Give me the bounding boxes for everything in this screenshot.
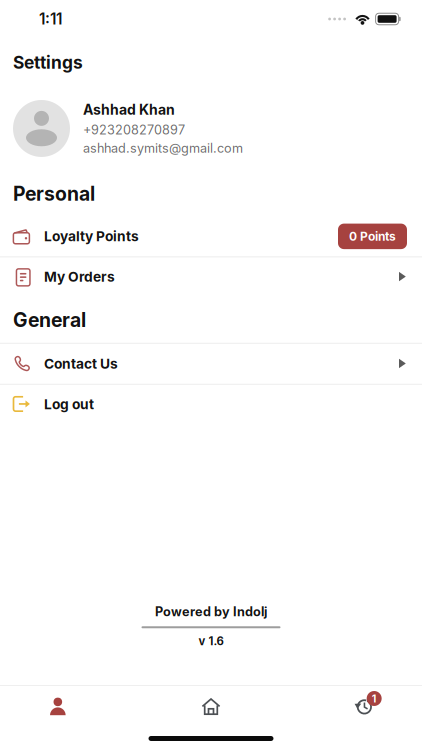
button[interactable]: Contact Us xyxy=(0,344,422,384)
button[interactable]: Loyalty Points xyxy=(0,216,422,256)
staticText: ashhad.symits@gmail.com xyxy=(83,140,243,156)
button[interactable]: Order history xyxy=(281,684,422,718)
staticText: Ashhad Khan xyxy=(83,101,175,118)
staticText: My Orders xyxy=(44,269,115,285)
staticText: 0 Points xyxy=(349,229,396,244)
staticText: Loyalty Points xyxy=(44,228,139,245)
button[interactable]: Log out xyxy=(0,385,422,424)
staticText: Powered by Indolj xyxy=(155,604,267,619)
staticText: v 1.6 xyxy=(198,634,223,648)
staticText: 1:11 xyxy=(39,10,62,28)
staticText: Settings xyxy=(13,52,83,73)
button[interactable]: My Orders xyxy=(0,257,422,296)
staticText: Log out xyxy=(44,396,94,412)
staticText: 1 xyxy=(372,692,377,705)
staticText: General xyxy=(13,308,86,332)
staticText: Contact Us xyxy=(44,355,118,372)
staticText: Personal xyxy=(13,182,95,205)
button[interactable]: Home xyxy=(141,686,281,717)
staticText: +923208270897 xyxy=(83,122,185,137)
button[interactable]: Profile xyxy=(0,687,141,716)
